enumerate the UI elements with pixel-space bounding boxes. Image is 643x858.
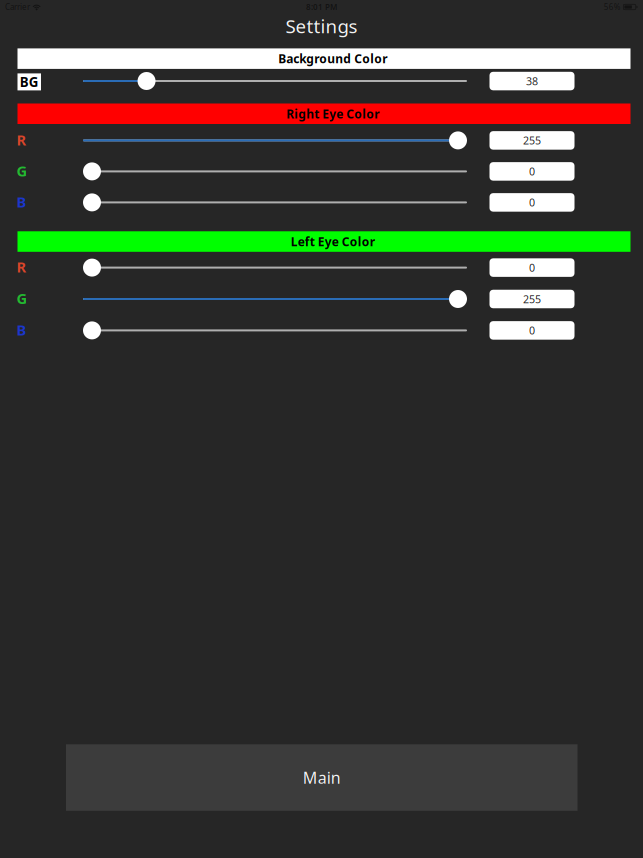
staticText: 0 xyxy=(529,164,535,178)
staticText: Background Color xyxy=(278,51,387,67)
staticText: G xyxy=(16,161,27,180)
staticText: R xyxy=(16,130,26,149)
staticText: BG xyxy=(20,73,39,91)
staticText: G xyxy=(16,289,27,308)
button[interactable]: R slider xyxy=(0,259,476,277)
button[interactable]: R slider xyxy=(0,131,476,149)
button[interactable]: G slider xyxy=(0,290,476,308)
staticText: 56% xyxy=(604,2,621,12)
staticText: Settings xyxy=(285,14,357,38)
staticText: Right Eye Color xyxy=(286,106,379,122)
staticText: 38 xyxy=(526,74,538,88)
staticText: Main xyxy=(303,767,341,788)
button[interactable]: 0 xyxy=(489,258,574,277)
button[interactable]: BG xyxy=(17,73,41,90)
button[interactable]: Background brightness slider xyxy=(0,72,476,90)
staticText: 0 xyxy=(529,260,535,275)
staticText: B xyxy=(16,320,26,339)
staticText: Carrier xyxy=(5,2,30,12)
staticText: 0 xyxy=(529,323,535,337)
button[interactable]: 0 xyxy=(489,321,574,340)
button[interactable]: B slider xyxy=(0,321,476,339)
button[interactable]: Main xyxy=(66,744,577,811)
button[interactable]: 0 xyxy=(489,193,574,212)
staticText: R xyxy=(16,257,26,277)
staticText: 0 xyxy=(529,195,535,209)
button[interactable]: B slider xyxy=(0,193,476,211)
button[interactable]: 255 xyxy=(489,290,574,308)
button[interactable]: 0 xyxy=(489,162,574,181)
staticText: 8:01 PM xyxy=(306,2,337,12)
staticText: Left Eye Color xyxy=(291,234,375,249)
button[interactable]: 38 xyxy=(489,72,574,90)
staticText: B xyxy=(16,192,26,211)
staticText: 255 xyxy=(523,292,541,306)
button[interactable]: G slider xyxy=(0,162,476,180)
button[interactable]: 255 xyxy=(489,131,574,150)
staticText: 255 xyxy=(523,133,541,147)
